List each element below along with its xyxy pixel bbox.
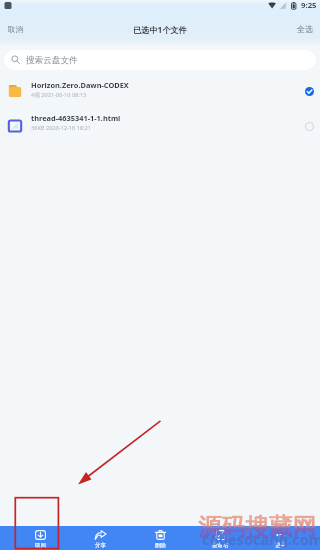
staticText: 9:25 <box>301 0 317 11</box>
staticText: 取回 <box>35 542 46 549</box>
staticText: thread-4635341-1-1.html <box>31 113 121 123</box>
staticText: Horizon.Zero.Dawn-CODEX <box>31 80 129 90</box>
staticText: 4项 2021-06-10 08:13 <box>31 91 87 99</box>
staticText: 搜索云盘文件 <box>26 55 78 66</box>
staticText: 取消 <box>8 25 23 34</box>
staticText: 重命名 <box>212 542 229 549</box>
button[interactable]: 重命名 <box>190 526 250 550</box>
staticText: 全选 <box>297 24 314 34</box>
staticText: 删除 <box>155 542 166 549</box>
staticText: 更多 <box>275 542 286 549</box>
staticText: 分享 <box>95 542 106 549</box>
staticText: 源码搜藏网 <box>198 512 316 542</box>
button[interactable]: 分享 <box>70 526 130 550</box>
button[interactable]: 搜索云盘文件 <box>4 50 316 70</box>
staticText: 36KB 2020-12-16 18:21 <box>31 124 91 132</box>
staticText: codesocang.com <box>202 529 320 549</box>
button[interactable]: 取消 <box>0 18 31 41</box>
button[interactable]: 更多 <box>250 526 310 550</box>
button[interactable]: 删除 <box>130 526 190 550</box>
button[interactable]: Horizon.Zero.Dawn-CODEX <box>0 81 320 101</box>
button[interactable]: 全选 <box>291 17 320 41</box>
button[interactable]: thread-4635341-1-1.html <box>0 114 320 134</box>
button[interactable]: Selected <box>300 82 318 100</box>
staticText: 已选中1个文件 <box>133 24 187 35</box>
button[interactable]: 取回 <box>10 526 70 550</box>
button[interactable]: Not selected <box>300 117 318 135</box>
